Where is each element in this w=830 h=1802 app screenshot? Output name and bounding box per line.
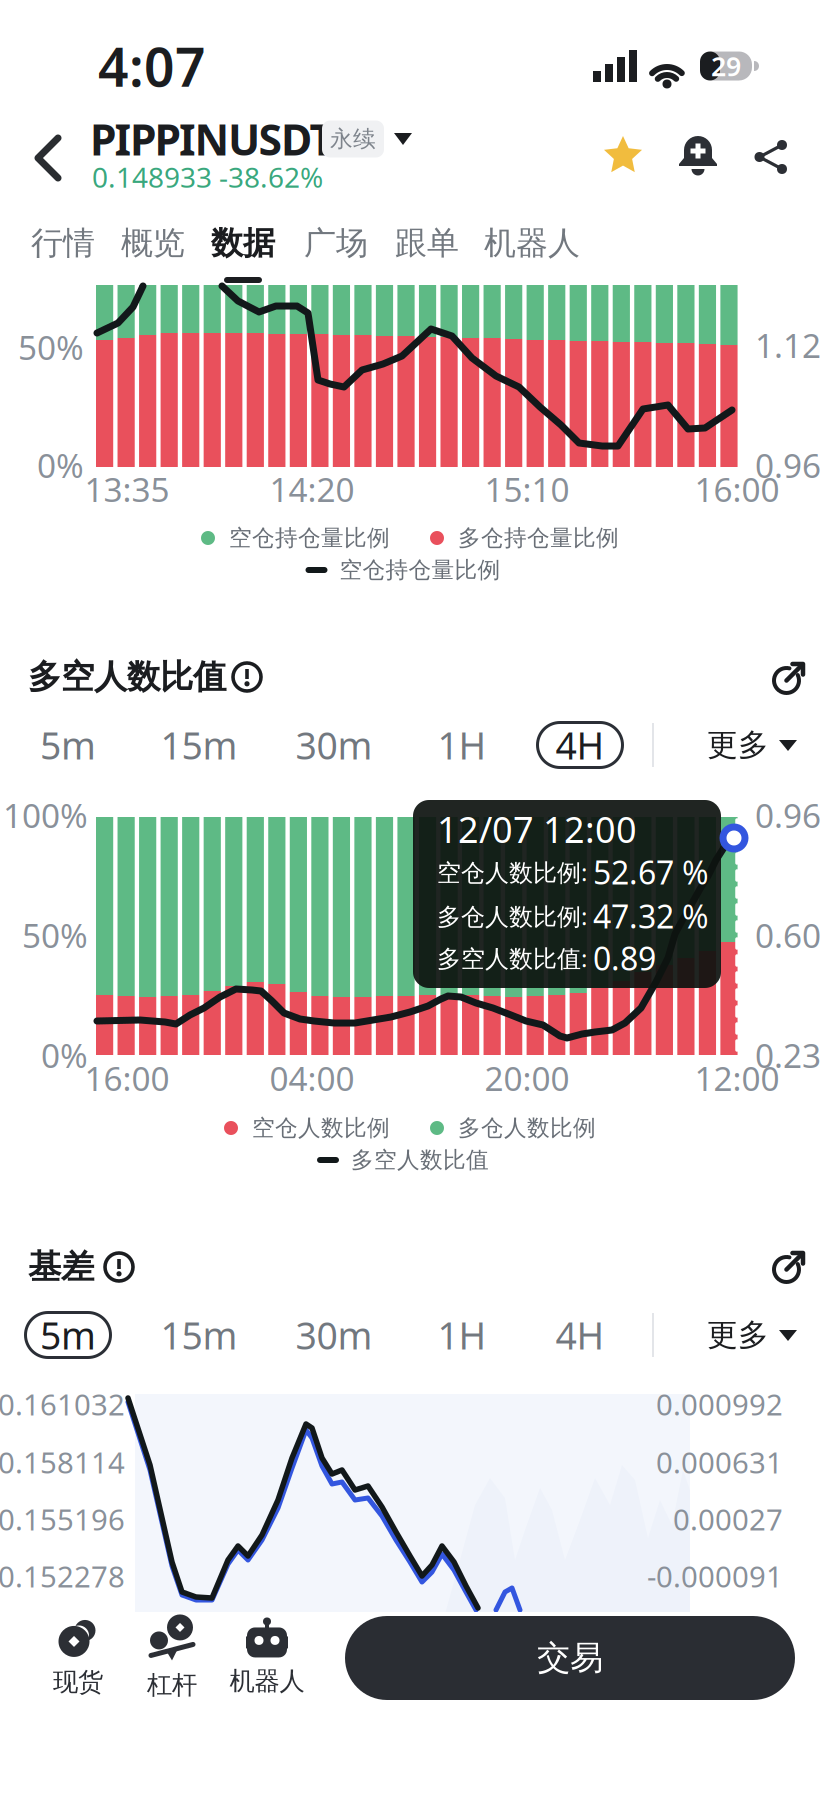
button[interactable]: 跟单 xyxy=(395,223,459,263)
staticText: 数据 xyxy=(211,223,275,263)
staticText: 15m xyxy=(160,1310,237,1360)
staticText: 0.00027 xyxy=(673,1499,783,1538)
staticText: 更多 xyxy=(707,1316,769,1354)
staticText: 0.161032 xyxy=(0,1384,125,1423)
button[interactable]: 15m xyxy=(155,1311,243,1359)
staticText: 0.96 xyxy=(755,443,821,487)
button[interactable]: 广场 xyxy=(304,223,368,263)
staticText: 16:00 xyxy=(84,1056,169,1100)
staticText: 1H xyxy=(437,1310,486,1360)
staticText: 20:00 xyxy=(484,1056,569,1100)
staticText: 100% xyxy=(3,793,88,837)
button[interactable]: 1H xyxy=(418,1311,506,1359)
staticText: 47.32 % xyxy=(593,895,709,937)
button[interactable]: Contract selector xyxy=(322,120,414,157)
button[interactable]: 概览 xyxy=(121,223,185,263)
staticText: 50% xyxy=(22,913,88,957)
button[interactable]: Favorite xyxy=(603,135,643,177)
staticText: 12/07 12:00 xyxy=(437,805,637,853)
staticText: 5m xyxy=(40,1310,96,1360)
button[interactable]: 机器人 xyxy=(229,1617,304,1696)
button[interactable]: Price alerts xyxy=(678,136,718,176)
staticText: 4H xyxy=(555,1310,604,1360)
staticText: PIPPINUSDT xyxy=(90,111,334,167)
button[interactable]: 数据 xyxy=(211,223,275,263)
button[interactable]: 30m xyxy=(290,721,378,769)
staticText: 0.152278 xyxy=(0,1556,125,1595)
button[interactable]: 交易 xyxy=(345,1616,795,1700)
staticText: 空仓持仓量比例 xyxy=(339,556,500,584)
staticText: 0.89 xyxy=(593,937,656,979)
button[interactable]: 行情 xyxy=(31,223,95,263)
staticText: 多空人数比值 xyxy=(28,656,226,697)
staticText: 多空人数比值 xyxy=(351,1146,489,1174)
staticText: 15:10 xyxy=(484,467,569,511)
button[interactable]: 1H xyxy=(418,721,506,769)
staticText: 跟单 xyxy=(395,223,459,263)
staticText: 15m xyxy=(160,720,237,770)
staticText: 0.23 xyxy=(755,1033,821,1077)
staticText: 0.158114 xyxy=(0,1442,125,1481)
staticText: 多仓人数比例 xyxy=(458,1114,596,1142)
staticText: 1.12 xyxy=(755,323,821,367)
button[interactable]: Export xyxy=(772,1250,805,1283)
button[interactable]: Share xyxy=(754,140,787,173)
staticText: 50% xyxy=(18,325,84,369)
staticText: 行情 xyxy=(31,223,95,263)
staticText: 交易 xyxy=(537,1637,603,1678)
staticText: 更多 xyxy=(707,726,769,764)
staticText: 29 xyxy=(711,48,741,84)
staticText: -0.000091 xyxy=(647,1556,783,1595)
staticText: 4:07 xyxy=(98,31,206,101)
button[interactable]: Back xyxy=(32,133,64,183)
staticText: 0.148933 -38.62% xyxy=(92,158,323,196)
staticText: 30m xyxy=(295,1310,372,1360)
staticText: 永续 xyxy=(330,125,376,153)
button[interactable]: Info xyxy=(231,661,263,693)
staticText: 0% xyxy=(41,1033,88,1077)
staticText: 0.60 xyxy=(755,913,821,957)
button[interactable]: 5m xyxy=(24,721,112,769)
button[interactable]: 4H xyxy=(536,721,624,769)
staticText: 52.67 % xyxy=(593,851,709,893)
staticText: 现货 xyxy=(53,1666,103,1697)
button[interactable]: More timeframes xyxy=(707,726,797,764)
button[interactable]: 机器人 xyxy=(484,223,580,263)
staticText: 基差 xyxy=(28,1246,94,1287)
staticText: 0.155196 xyxy=(0,1499,125,1538)
staticText: 04:00 xyxy=(269,1056,354,1100)
button[interactable]: 杠杆 xyxy=(147,1615,197,1700)
staticText: 0.96 xyxy=(755,793,821,837)
staticText: 广场 xyxy=(304,223,368,263)
staticText: 30m xyxy=(295,720,372,770)
staticText: 0% xyxy=(37,443,84,487)
button[interactable]: 30m xyxy=(290,1311,378,1359)
button[interactable]: 4H xyxy=(536,1311,624,1359)
staticText: 机器人 xyxy=(229,1665,304,1696)
button[interactable]: Export xyxy=(772,661,805,694)
staticText: 多仓持仓量比例 xyxy=(458,524,619,552)
staticText: 机器人 xyxy=(484,223,580,263)
staticText: 空仓持仓量比例 xyxy=(229,524,390,552)
staticText: 多仓人数比例: xyxy=(437,900,593,932)
staticText: 14:20 xyxy=(269,467,354,511)
staticText: 4H xyxy=(555,720,604,770)
staticText: 12:00 xyxy=(694,1056,779,1100)
staticText: 16:00 xyxy=(694,467,779,511)
button[interactable]: 15m xyxy=(155,721,243,769)
staticText: 0.000631 xyxy=(656,1442,783,1481)
staticText: 13:35 xyxy=(84,467,169,511)
staticText: 杠杆 xyxy=(147,1669,197,1700)
staticText: 空仓人数比例 xyxy=(252,1114,390,1142)
button[interactable]: 现货 xyxy=(53,1618,103,1697)
staticText: 多空人数比值: xyxy=(437,942,593,974)
staticText: 5m xyxy=(40,720,96,770)
button[interactable]: More timeframes xyxy=(707,1316,797,1354)
staticText: 0.000992 xyxy=(656,1384,783,1423)
button[interactable]: 5m xyxy=(24,1311,112,1359)
staticText: 概览 xyxy=(121,223,185,263)
button[interactable]: Info xyxy=(103,1251,135,1283)
staticText: 1H xyxy=(437,720,486,770)
staticText: 空仓人数比例: xyxy=(437,856,593,888)
